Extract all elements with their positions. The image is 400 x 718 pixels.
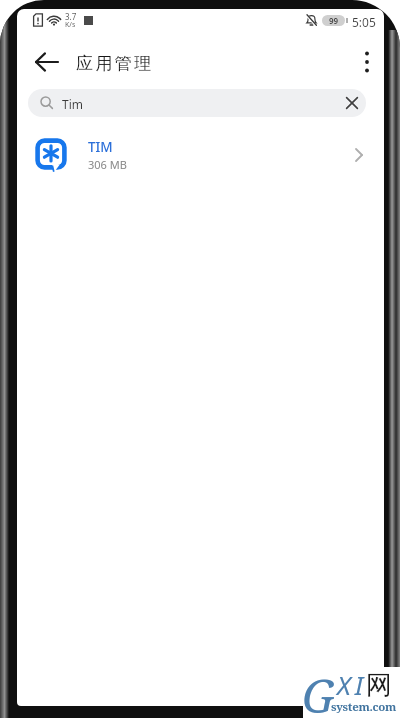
staticText: 网 bbox=[366, 669, 392, 702]
staticText: 306 MB bbox=[88, 157, 127, 172]
staticText: TIM bbox=[88, 138, 113, 156]
staticText: XI bbox=[337, 667, 368, 702]
staticText: K/s bbox=[65, 20, 76, 30]
staticText: 应用管理 bbox=[76, 53, 154, 74]
staticText: 5:05 bbox=[352, 14, 376, 30]
button[interactable] bbox=[338, 89, 366, 117]
staticText: 3.7 bbox=[65, 11, 77, 22]
staticText: G bbox=[302, 664, 335, 718]
staticText: 99 bbox=[329, 15, 339, 26]
button[interactable]: TIM bbox=[17, 131, 384, 191]
button[interactable] bbox=[351, 45, 383, 79]
staticText: system.com bbox=[331, 699, 397, 715]
staticText: Tim bbox=[62, 96, 83, 112]
button[interactable]: Tim bbox=[28, 89, 366, 117]
button[interactable] bbox=[25, 45, 69, 79]
